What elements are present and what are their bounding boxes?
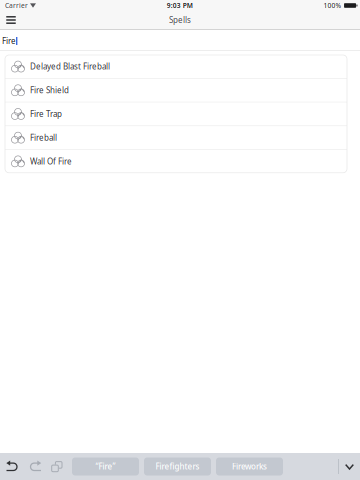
button[interactable]: Wall Of Fire (5, 150, 347, 173)
staticText: 9:03 PM (167, 1, 193, 10)
button[interactable]: Redo (24, 455, 47, 477)
staticText: Fireball (30, 132, 57, 143)
staticText: Delayed Blast Fireball (30, 61, 110, 72)
staticText: Spells (169, 15, 191, 25)
button[interactable]: Fireball (5, 126, 347, 150)
button[interactable]: “Fire” (72, 457, 139, 475)
staticText: Fire Trap (30, 109, 62, 119)
staticText: Firefighters (155, 461, 199, 472)
button[interactable]: Paste (47, 455, 66, 477)
button[interactable]: Hide Keyboard (339, 455, 360, 477)
staticText: Fire Shield (30, 85, 69, 95)
staticText: “Fire” (95, 461, 115, 472)
staticText: Fire (2, 36, 16, 46)
staticText: Wall Of Fire (30, 156, 72, 167)
staticText: Fireworks (232, 461, 267, 472)
button[interactable]: Fireworks (216, 457, 283, 475)
button[interactable]: Menu (0, 11, 21, 29)
button[interactable]: Fire Shield (5, 79, 347, 102)
staticText: Carrier (5, 1, 28, 10)
staticText: 100% (323, 1, 341, 10)
button[interactable]: Firefighters (144, 457, 211, 475)
button[interactable]: Delayed Blast Fireball (5, 55, 347, 79)
button[interactable]: Fire Trap (5, 102, 347, 126)
button[interactable]: Undo (0, 455, 24, 477)
